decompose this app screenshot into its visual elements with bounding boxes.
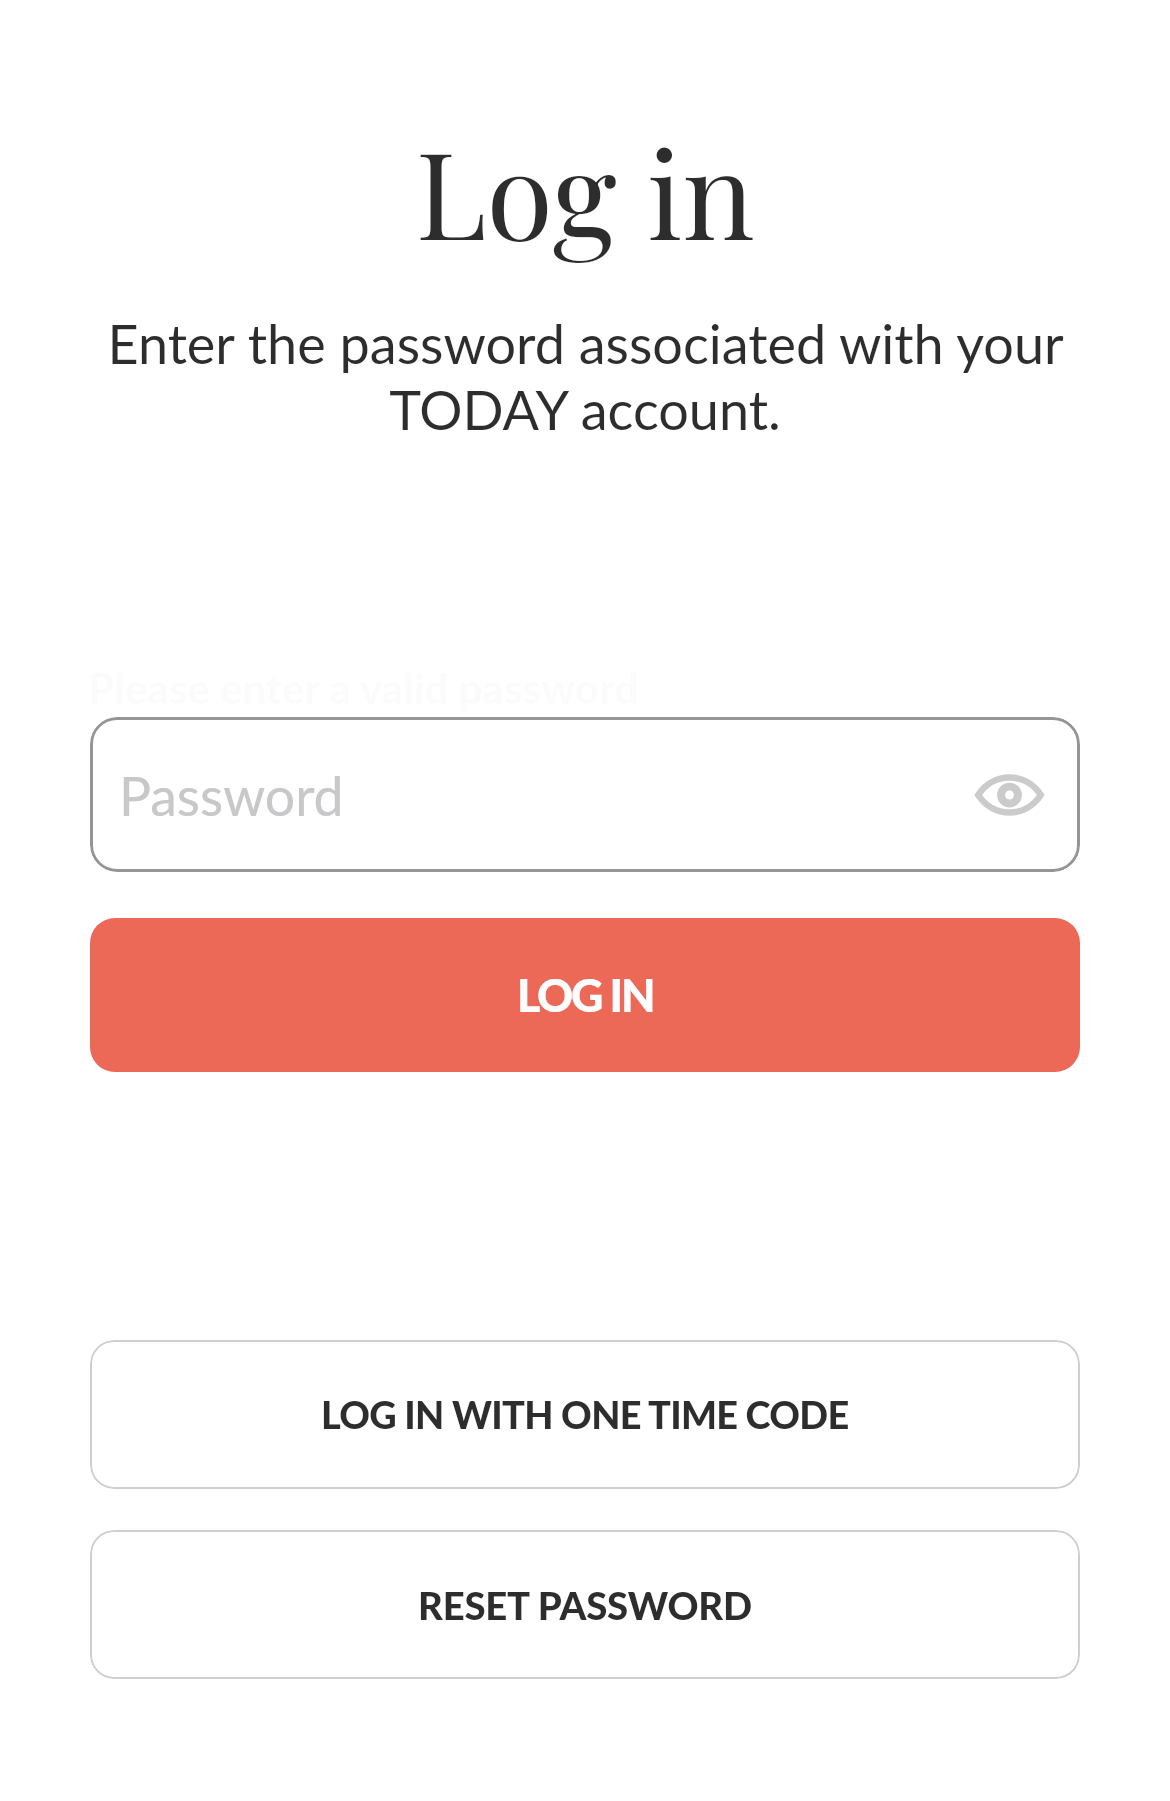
staticText: LOG IN WITH ONE TIME CODE (321, 1392, 849, 1437)
staticText: Log in (0, 109, 1170, 270)
button[interactable]: Password (90, 717, 1080, 872)
button[interactable]: LOG IN WITH ONE TIME CODE (90, 1340, 1080, 1489)
staticText: Enter the password associated with your … (55, 311, 1115, 442)
staticText: Password (119, 763, 344, 827)
staticText: RESET PASSWORD (418, 1582, 752, 1628)
button[interactable]: Show password (967, 753, 1051, 837)
staticText: LOG IN (517, 968, 654, 1022)
button[interactable]: RESET PASSWORD (90, 1530, 1080, 1679)
button[interactable]: LOG IN (90, 918, 1080, 1072)
